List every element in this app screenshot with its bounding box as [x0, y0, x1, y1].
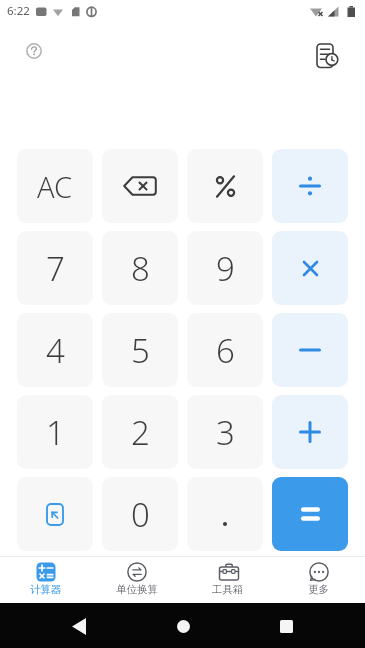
button[interactable]: 单位换算 — [91, 557, 182, 603]
button[interactable] — [17, 477, 93, 551]
button[interactable]: 1 — [17, 395, 93, 469]
button[interactable]: 6 — [187, 313, 263, 387]
button[interactable] — [272, 612, 300, 640]
staticText: 4 — [46, 328, 65, 373]
button[interactable] — [65, 612, 93, 640]
button[interactable]: 工具箱 — [182, 557, 273, 603]
staticText: 单位换算 — [116, 583, 158, 596]
button[interactable] — [314, 42, 342, 70]
button[interactable] — [272, 149, 348, 223]
button[interactable]: 8 — [102, 231, 178, 305]
staticText: 工具箱 — [212, 583, 244, 596]
staticText: 计算器 — [30, 583, 62, 596]
button[interactable] — [272, 477, 348, 551]
button[interactable] — [272, 231, 348, 305]
button[interactable]: 9 — [187, 231, 263, 305]
button[interactable]: 2 — [102, 395, 178, 469]
button[interactable]: 计算器 — [0, 557, 91, 603]
staticText: 6 — [216, 328, 235, 373]
staticText: 0 — [131, 492, 150, 537]
button[interactable] — [272, 395, 348, 469]
button[interactable]: AC — [17, 149, 93, 223]
staticText: 6:22 — [7, 3, 30, 19]
staticText: AC — [37, 167, 73, 206]
button[interactable]: 4 — [17, 313, 93, 387]
button[interactable]: 更多 — [273, 557, 364, 603]
staticText: 3 — [216, 410, 235, 455]
button[interactable] — [23, 40, 45, 62]
staticText: 7 — [46, 246, 65, 291]
button[interactable]: 3 — [187, 395, 263, 469]
button[interactable] — [187, 477, 263, 551]
button[interactable] — [169, 612, 197, 640]
button[interactable] — [272, 313, 348, 387]
staticText: 5 — [131, 328, 150, 373]
button[interactable]: 5 — [102, 313, 178, 387]
button[interactable] — [102, 149, 178, 223]
staticText: 2 — [131, 410, 150, 455]
staticText: 1 — [46, 410, 65, 455]
staticText: 8 — [131, 246, 150, 291]
button[interactable] — [187, 149, 263, 223]
staticText: 9 — [216, 246, 235, 291]
button[interactable]: 0 — [102, 477, 178, 551]
staticText: 更多 — [308, 583, 329, 596]
button[interactable]: 7 — [17, 231, 93, 305]
